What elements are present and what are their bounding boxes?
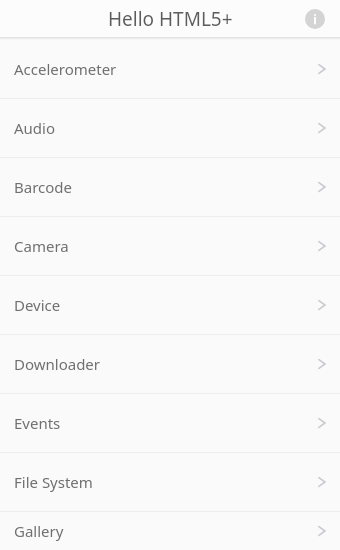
staticText: Gallery xyxy=(14,521,64,541)
button[interactable]: Audio xyxy=(0,99,340,157)
staticText: Device xyxy=(14,295,61,315)
button[interactable]: Device xyxy=(0,276,340,334)
staticText: Barcode xyxy=(14,177,73,197)
button[interactable]: Gallery xyxy=(0,512,340,550)
button[interactable]: Downloader xyxy=(0,335,340,393)
staticText: File System xyxy=(14,472,93,492)
staticText: Accelerometer xyxy=(14,59,117,79)
button[interactable]: Barcode xyxy=(0,158,340,216)
staticText: Audio xyxy=(14,118,56,138)
staticText: Hello HTML5+ xyxy=(108,6,233,32)
staticText: Events xyxy=(14,413,61,433)
staticText: Camera xyxy=(14,236,69,256)
button[interactable]: Camera xyxy=(0,217,340,275)
button[interactable]: Accelerometer xyxy=(0,40,340,98)
button[interactable]: About xyxy=(300,4,330,34)
button[interactable]: Events xyxy=(0,394,340,452)
staticText: Downloader xyxy=(14,354,101,374)
button[interactable]: File System xyxy=(0,453,340,511)
